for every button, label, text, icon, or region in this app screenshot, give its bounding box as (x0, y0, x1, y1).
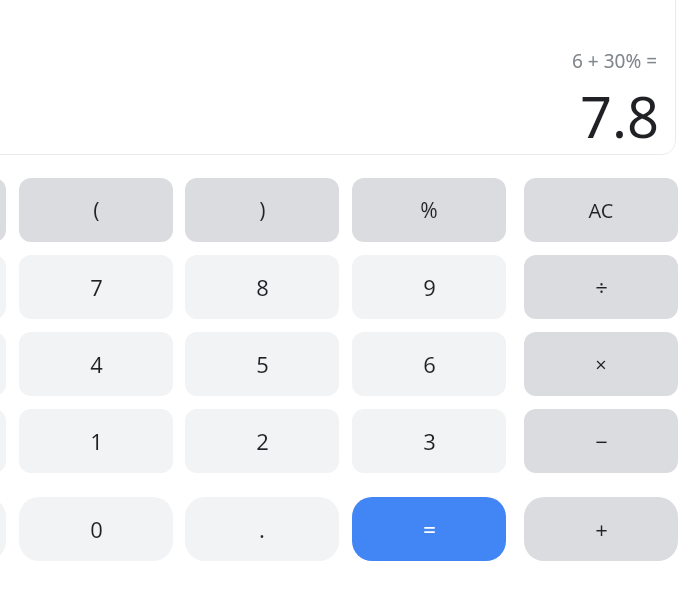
button[interactable]: Function (0, 332, 6, 396)
staticText: 6 (423, 349, 436, 379)
staticText: = (423, 514, 436, 544)
staticText: AC (588, 197, 614, 224)
button[interactable]: × (524, 332, 678, 396)
button[interactable]: = (352, 497, 506, 561)
staticText: ( (93, 196, 100, 225)
button[interactable]: ( (19, 178, 173, 242)
button[interactable]: AC (524, 178, 678, 242)
button[interactable]: − (524, 409, 678, 473)
staticText: ) (259, 196, 266, 225)
staticText: × (595, 351, 607, 378)
staticText: − (595, 426, 608, 456)
button[interactable]: ÷ (524, 255, 678, 319)
button[interactable]: 2 (185, 409, 339, 473)
staticText: 7.8 (579, 78, 659, 144)
button[interactable]: 6 (352, 332, 506, 396)
staticText: 1 (90, 426, 103, 456)
staticText: 5 (256, 349, 269, 379)
staticText: 9 (423, 272, 436, 302)
staticText: 0 (90, 514, 103, 544)
staticText: 7 (90, 272, 103, 302)
staticText: 4 (90, 349, 103, 379)
button[interactable]: ) (185, 178, 339, 242)
button[interactable]: % (352, 178, 506, 242)
button[interactable]: Clear entry (0, 178, 6, 242)
button[interactable]: 1 (19, 409, 173, 473)
staticText: ÷ (595, 272, 608, 302)
button[interactable]: Backspace (0, 255, 6, 319)
button[interactable]: 7 (19, 255, 173, 319)
button[interactable]: 4 (19, 332, 173, 396)
button[interactable]: 0 (19, 497, 173, 561)
staticText: % (420, 196, 438, 225)
button[interactable]: 5 (185, 332, 339, 396)
button[interactable]: Function (0, 409, 6, 473)
staticText: . (259, 514, 265, 544)
button[interactable]: 9 (352, 255, 506, 319)
button[interactable]: Function (0, 497, 6, 561)
staticText: 6 + 30% = (572, 48, 657, 74)
staticText: 2 (256, 426, 269, 456)
staticText: 8 (256, 272, 269, 302)
button[interactable]: + (524, 497, 678, 561)
button[interactable]: . (185, 497, 339, 561)
button[interactable]: 3 (352, 409, 506, 473)
staticText: 3 (423, 426, 436, 456)
button[interactable]: 8 (185, 255, 339, 319)
staticText: + (595, 514, 608, 544)
